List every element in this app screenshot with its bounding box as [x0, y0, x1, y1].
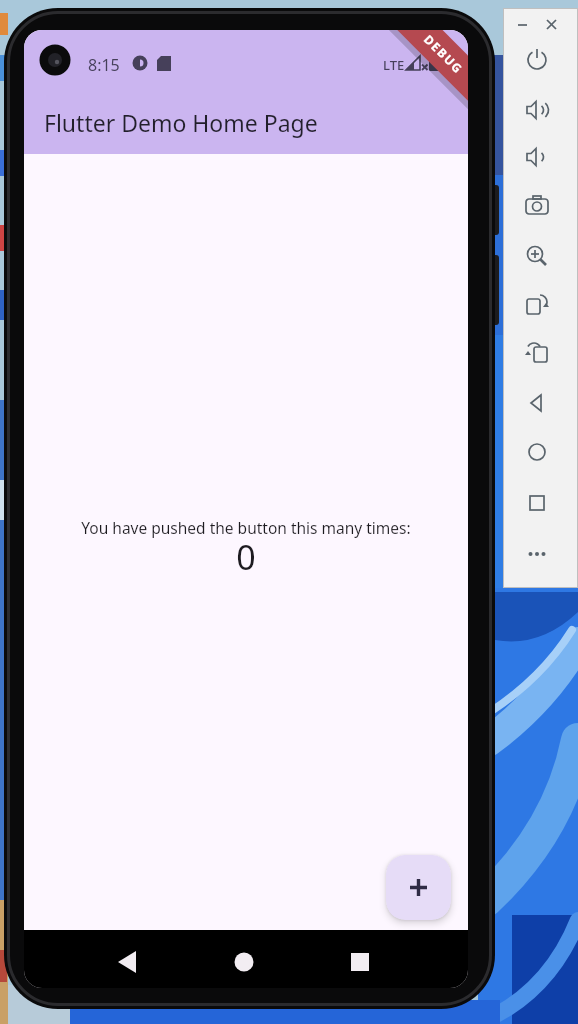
staticText: You have pushed the button this many tim… [24, 517, 468, 538]
staticText: LTE [383, 56, 405, 74]
staticText: Flutter Demo Home Page [44, 107, 318, 138]
staticText: 8:15 [88, 54, 120, 76]
button[interactable] [386, 855, 451, 920]
staticText: 0 [24, 534, 468, 580]
